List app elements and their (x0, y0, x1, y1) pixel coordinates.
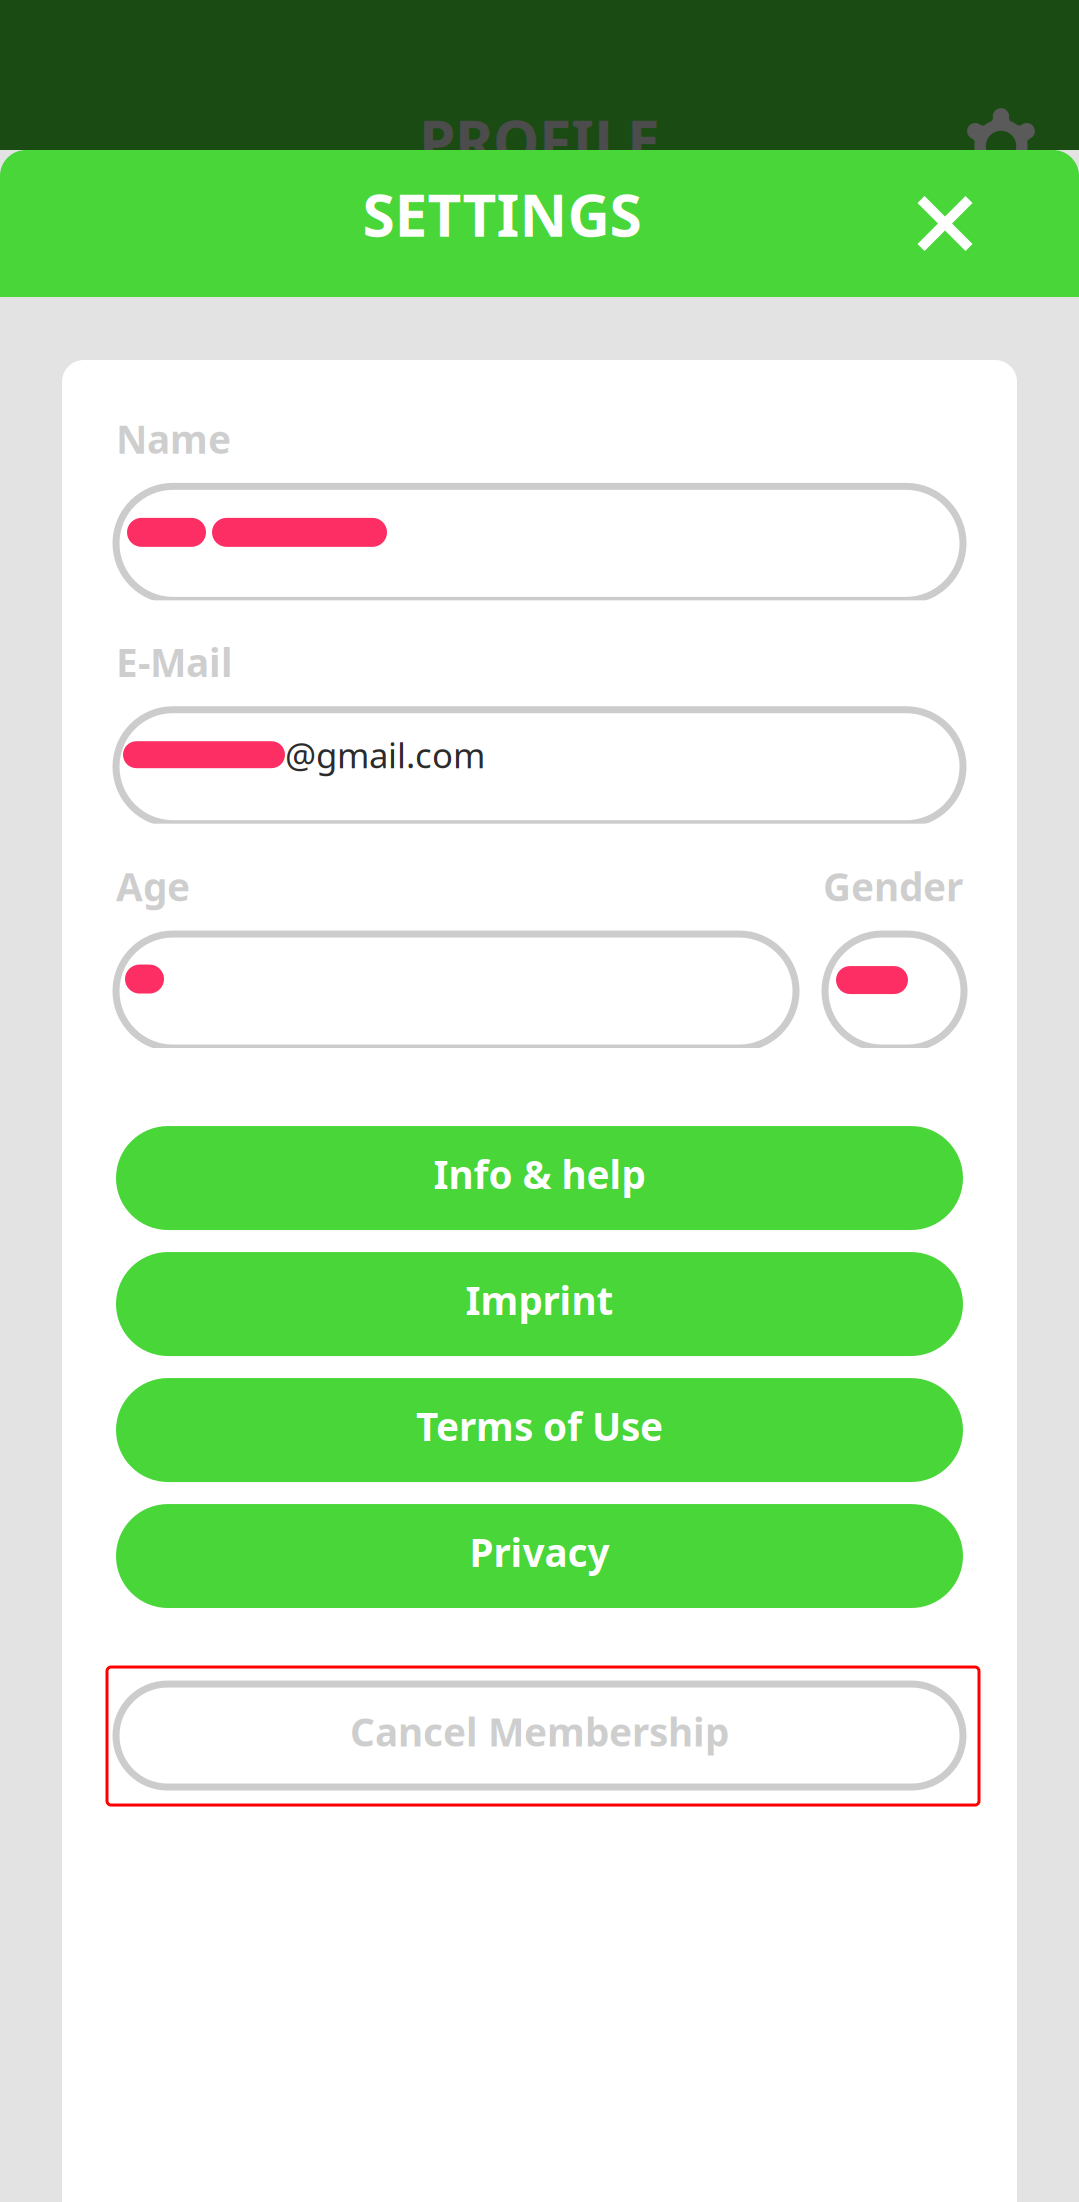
staticText: Age (116, 861, 190, 912)
staticText: SETTINGS (362, 175, 641, 253)
staticText: Imprint (465, 1274, 613, 1326)
staticText: E-Mail (116, 636, 233, 688)
button[interactable]: Close (893, 171, 997, 275)
staticText: @gmail.com (285, 732, 485, 778)
staticText: PROFILE (419, 101, 660, 179)
staticText: Gender (823, 861, 963, 912)
staticText: Terms of Use (416, 1400, 663, 1452)
button[interactable]: Terms of Use (116, 1378, 963, 1482)
button[interactable]: Info & help (116, 1126, 963, 1230)
button[interactable]: Cancel Membership (116, 1684, 963, 1787)
staticText: Privacy (469, 1526, 609, 1578)
button[interactable]: Privacy (116, 1504, 963, 1608)
button[interactable]: Imprint (116, 1252, 963, 1356)
staticText: Info & help (433, 1148, 645, 1200)
staticText: Name (116, 413, 231, 464)
staticText: Cancel Membership (350, 1706, 729, 1757)
